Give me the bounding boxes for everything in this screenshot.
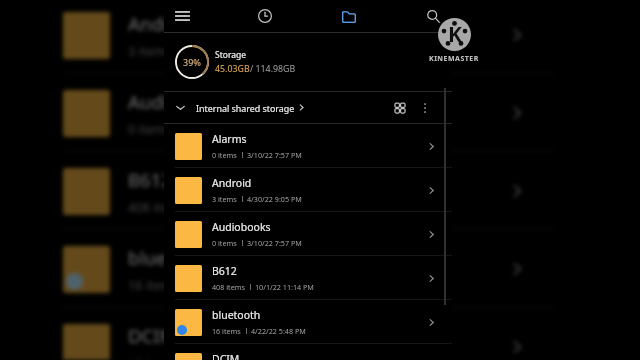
button[interactable]: More options [412,92,438,123]
button[interactable]: Grid view [388,92,412,123]
staticText: 3 items [212,194,237,204]
button[interactable]: Internal shared storage [164,92,388,123]
button[interactable]: Android [43,0,554,74]
staticText: Android [128,11,198,36]
staticText: 3/10/22 7:57 PM [247,150,302,160]
staticText: K [448,20,462,49]
staticText: 3 items [128,42,172,59]
staticText: 408 items [212,282,245,292]
staticText: 0 items [212,238,237,248]
button[interactable]: B612 [164,256,452,300]
button[interactable]: Audiobooks [43,74,554,152]
staticText: 39% [183,56,201,68]
staticText: Audiobooks [212,220,271,234]
staticText: 9/30/22 8:10 PM [198,354,296,360]
button[interactable]: Audiobooks [164,212,452,256]
button[interactable]: bluetooth [43,230,554,308]
staticText: 4/30/22 9:05 PM [247,194,302,204]
staticText: 0 items [128,120,172,137]
button[interactable]: B612 [43,152,554,230]
staticText: Internal shared storage [196,102,295,114]
staticText: B612 [212,264,237,278]
staticText: / 114.98GB [250,63,296,75]
staticText: 0 items [212,150,237,160]
staticText: 408 items [128,198,187,215]
button[interactable]: bluetooth [164,300,452,344]
staticText: Android [212,176,252,190]
staticText: Alarms [212,132,247,146]
button[interactable]: DCIM [164,344,452,360]
button[interactable]: DCIM [43,308,554,360]
button[interactable]: Search [419,0,447,32]
button[interactable]: Android [164,168,452,212]
staticText: 4/22/22 5:48 PM [251,326,306,336]
staticText: Audiobooks [128,89,232,114]
staticText: 3/10/22 7:57 PM [247,238,302,248]
button[interactable]: 39% [164,33,452,91]
staticText: B612 [128,167,173,192]
button[interactable]: Files [335,0,363,32]
staticText: Storage [215,49,247,61]
staticText: 4/22/22 5:48 PM [198,276,296,293]
staticText: DCIM [128,323,177,348]
staticText: 10/1/22 11:14 PM [255,282,314,292]
staticText: 4/30/22 9:05 PM [190,42,288,59]
staticText: bluetooth [128,245,214,270]
staticText: 45.03GB [215,63,250,75]
button[interactable]: Alarms [164,124,452,168]
button[interactable]: Recent [251,0,279,32]
staticText: KINEMASTER [429,54,479,64]
staticText: DCIM [212,352,240,360]
staticText: 12 items [128,354,180,360]
staticText: 10/1/22 11:14 PM [205,198,310,215]
staticText: 16 items [128,276,180,293]
staticText: bluetooth [212,308,261,322]
button[interactable]: Menu [168,0,196,32]
staticText: 3/10/22 7:57 PM [190,120,288,137]
staticText: 16 items [212,326,241,336]
